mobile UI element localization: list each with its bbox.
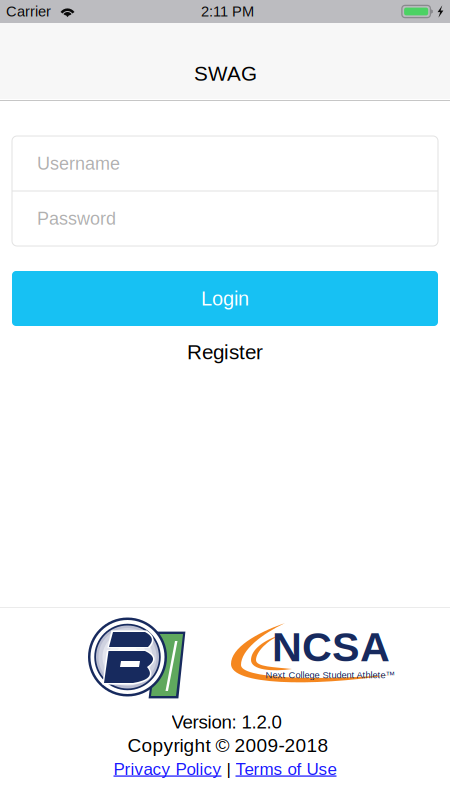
button[interactable]: Login (12, 271, 438, 326)
staticText: NCSA (272, 624, 390, 670)
staticText: | (221, 759, 235, 778)
staticText: Login (201, 287, 249, 310)
staticText: Password (37, 208, 116, 228)
staticText: Username (37, 153, 120, 173)
staticText: Carrier (6, 3, 51, 20)
staticText: 2:11 PM (201, 3, 254, 20)
staticText: SWAG (194, 62, 257, 85)
button[interactable]: Terms of Use (235, 759, 336, 778)
staticText: Privacy Policy (113, 759, 221, 778)
button[interactable]: Privacy Policy (113, 759, 221, 778)
staticText: Next College Student Athlete™ (265, 670, 394, 680)
staticText: Version: 1.2.0 (171, 712, 281, 732)
staticText: Register (187, 340, 263, 364)
staticText: Terms of Use (235, 759, 336, 778)
staticText: Copyright © 2009-2018 (127, 735, 328, 756)
button[interactable]: Register (12, 335, 438, 369)
